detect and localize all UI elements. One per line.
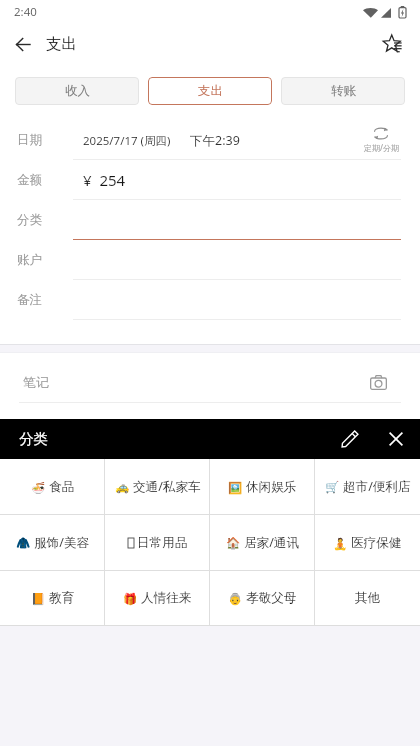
- button[interactable]: 🏠: [210, 515, 315, 570]
- button[interactable]: Templates: [369, 23, 415, 65]
- staticText: 🏠: [226, 536, 241, 549]
- button[interactable]: 📙: [0, 571, 105, 625]
- staticText: 账户: [17, 252, 42, 268]
- button[interactable]: Back: [0, 23, 46, 65]
- staticText: 转账: [331, 83, 356, 99]
- staticText: 食品: [49, 479, 75, 495]
- button[interactable]: 🚕: [105, 459, 210, 514]
- staticText: 🎁: [123, 592, 138, 605]
- staticText: 笔记: [23, 374, 49, 390]
- button[interactable]: 👵: [210, 571, 315, 625]
- staticText: 📙: [31, 592, 46, 605]
- button[interactable]: Close: [375, 419, 417, 459]
- staticText: 分类: [19, 430, 48, 448]
- staticText: 备注: [17, 292, 42, 308]
- staticText: 日期: [17, 132, 42, 148]
- button[interactable]: 支出: [148, 77, 272, 105]
- button[interactable]: 🖼: [210, 459, 315, 514]
- button[interactable]: 🎁: [105, 571, 210, 625]
- staticText: 🧘: [333, 537, 348, 550]
- button[interactable]: 账户: [0, 240, 420, 280]
- staticText: 支出: [46, 34, 77, 54]
- staticText: 休闲娱乐: [246, 479, 297, 495]
- staticText: 🧥: [16, 536, 31, 549]
- staticText: 金额: [17, 172, 42, 188]
- staticText: ¥ 254: [83, 170, 126, 190]
- button[interactable]: 金额: [0, 160, 420, 200]
- staticText: 支出: [198, 83, 223, 99]
- staticText: 分类: [17, 212, 42, 228]
- staticText: 2025/7/17 (周四): [83, 133, 171, 149]
- staticText: 下午2:39: [190, 132, 240, 149]
- staticText: 超市/便利店: [343, 478, 411, 495]
- button[interactable]: 🧥: [0, 515, 105, 570]
- button[interactable]: 收入: [15, 77, 139, 105]
- button[interactable]: Edit: [328, 419, 372, 459]
- button[interactable]: 其他: [315, 571, 420, 625]
- button[interactable]: 🍜: [0, 459, 105, 514]
- staticText: 服饰/美容: [34, 534, 90, 551]
- button[interactable]: 🧘: [315, 515, 420, 570]
- button[interactable]: 日常用品: [105, 515, 210, 570]
- staticText: 交通/私家车: [133, 478, 201, 495]
- staticText: 🖼: [228, 481, 243, 494]
- staticText: 2:40: [14, 4, 37, 20]
- button[interactable]: 备注: [0, 280, 420, 320]
- staticText: 居家/通讯: [244, 534, 300, 551]
- staticText: 日常用品: [137, 535, 188, 551]
- button[interactable]: 转账: [281, 77, 405, 105]
- staticText: 其他: [355, 590, 381, 606]
- staticText: 孝敬父母: [246, 590, 297, 606]
- staticText: 教育: [49, 590, 75, 606]
- staticText: 人情往来: [141, 590, 192, 606]
- button[interactable]: 定期/分期: [352, 127, 410, 153]
- button[interactable]: Camera: [358, 362, 398, 402]
- staticText: 收入: [65, 83, 90, 99]
- button[interactable]: 🛒: [315, 459, 420, 514]
- button[interactable]: 日期: [0, 120, 420, 160]
- staticText: 🚕: [115, 480, 130, 493]
- staticText: 🛒: [325, 480, 340, 493]
- staticText: 👵: [228, 592, 243, 605]
- button[interactable]: 分类: [0, 200, 420, 240]
- staticText: 定期/分期: [364, 142, 399, 153]
- staticText: 🍜: [31, 481, 46, 494]
- staticText: 医疗保健: [351, 535, 402, 551]
